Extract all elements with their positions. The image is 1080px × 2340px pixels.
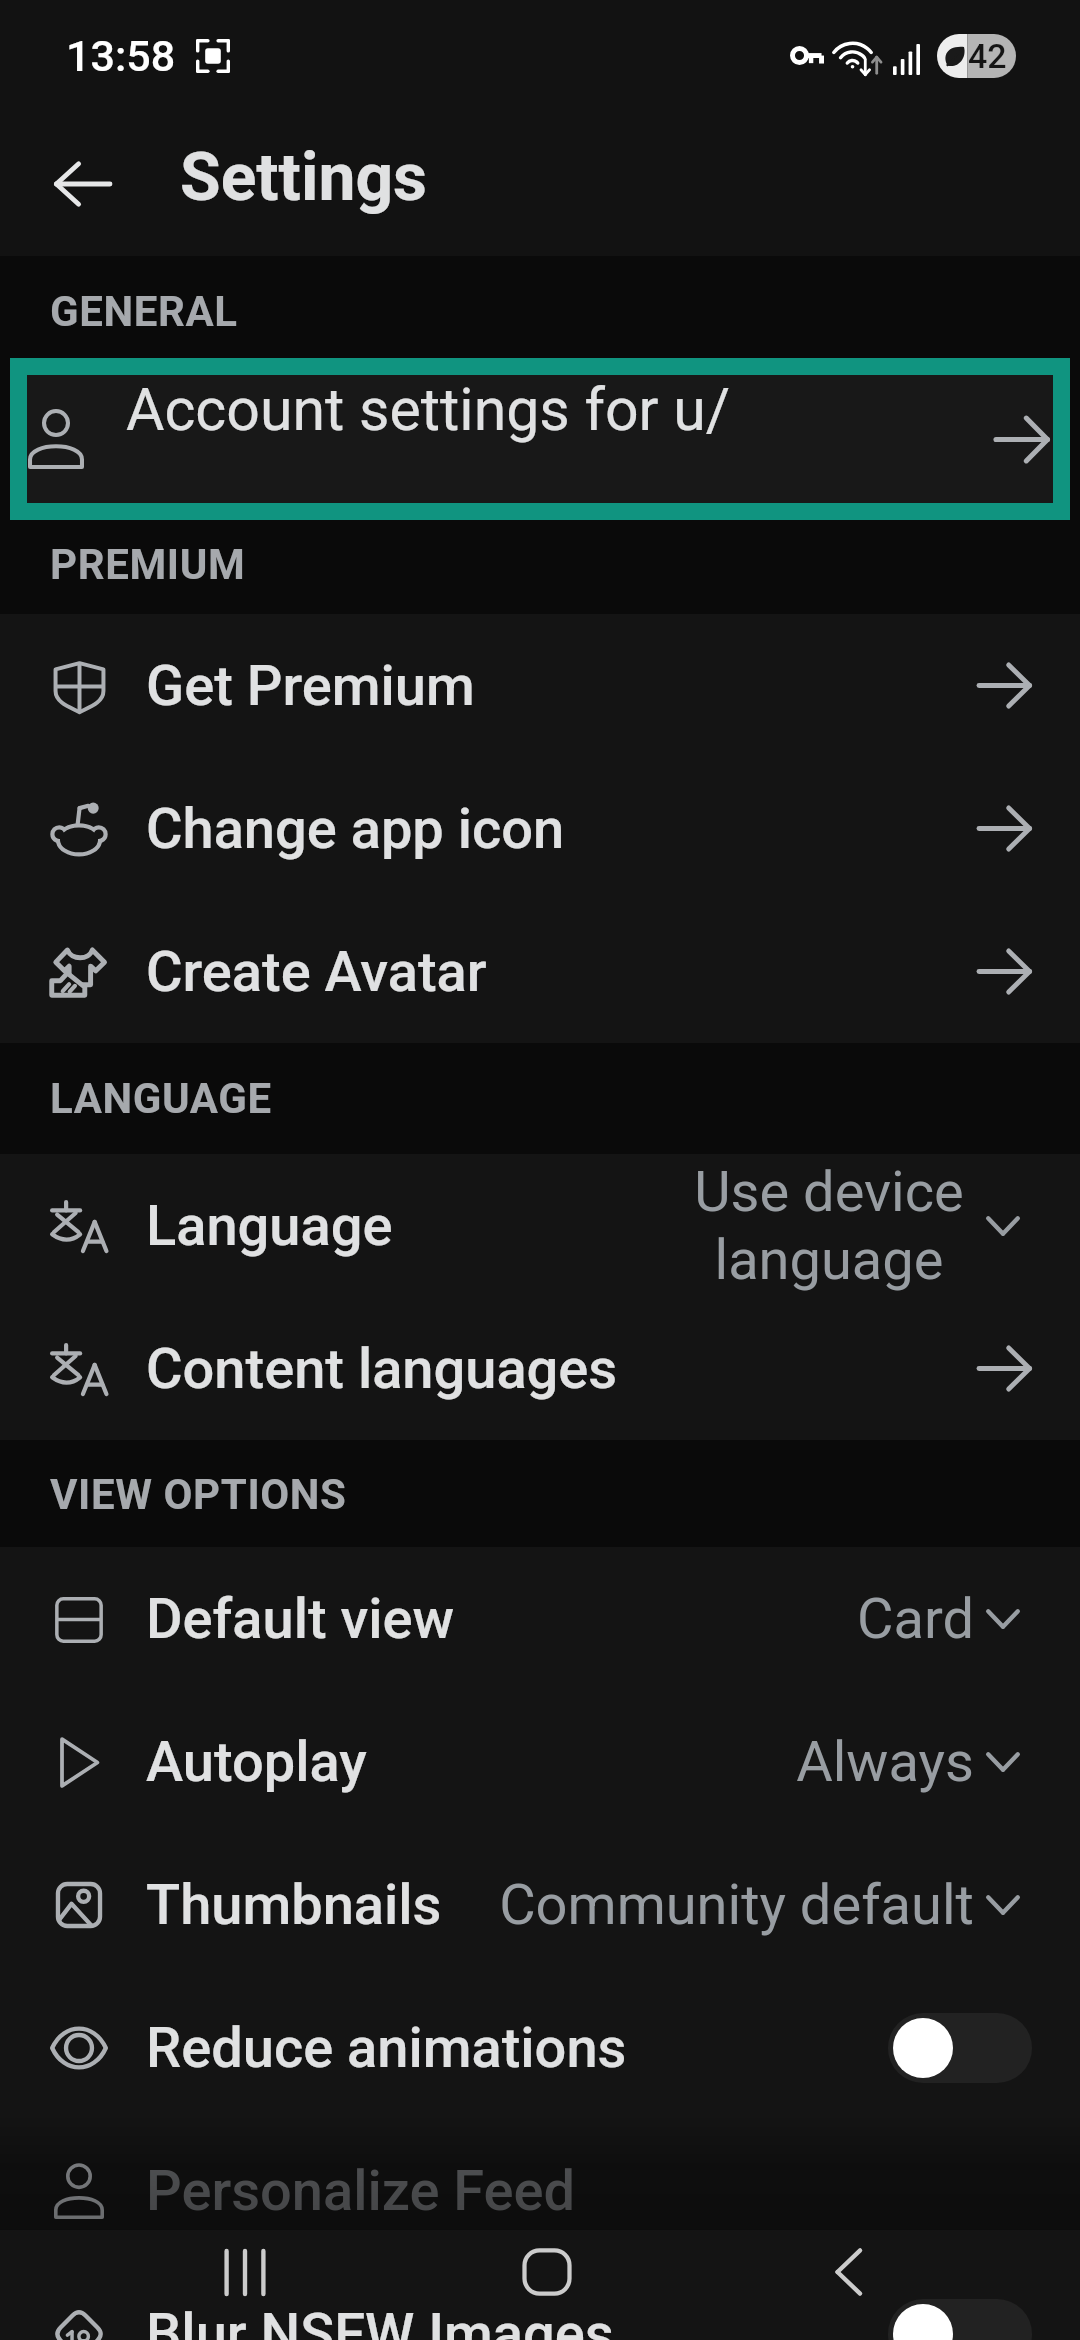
staticText: Content languages [146, 1336, 618, 1402]
staticText: Thumbnails [146, 1872, 442, 1938]
button[interactable]: Home [499, 2247, 595, 2297]
staticText: Create Avatar [146, 939, 487, 1005]
button[interactable]: Language [0, 1154, 1080, 1297]
staticText: Account settings for u/ [126, 375, 731, 444]
staticText: Default view [146, 1586, 455, 1652]
staticText: Personalize Feed [146, 2158, 576, 2224]
staticText: 42 [968, 36, 1007, 76]
staticText: Reduce animations [146, 2015, 627, 2081]
staticText: Change app icon [146, 796, 565, 862]
staticText: Language [146, 1193, 393, 1259]
button[interactable]: Recent apps [197, 2247, 293, 2297]
button[interactable]: Content languages [0, 1297, 1080, 1440]
staticText: PREMIUM [50, 540, 246, 589]
button[interactable]: Create Avatar [0, 900, 1080, 1043]
button[interactable]: Back [26, 128, 138, 240]
staticText: LANGUAGE [50, 1074, 272, 1123]
button[interactable]: Personalize Feed [0, 2119, 1080, 2262]
button[interactable]: Reduce animations [0, 1976, 1080, 2119]
staticText: Get Premium [146, 653, 475, 719]
button[interactable]: Change app icon [0, 757, 1080, 900]
button[interactable]: Default view [0, 1547, 1080, 1690]
button[interactable]: Blur NSFW Images [0, 2262, 1080, 2340]
button[interactable]: Thumbnails [0, 1833, 1080, 1976]
button[interactable]: Back [800, 2247, 896, 2297]
button[interactable]: Get Premium [0, 614, 1080, 757]
staticText: GENERAL [50, 287, 238, 336]
staticText: Settings [180, 139, 428, 216]
staticText: Blur NSFW Images [146, 2301, 614, 2340]
staticText: Use device language [684, 1159, 974, 1293]
button[interactable]: Autoplay [0, 1690, 1080, 1833]
staticText: 13:58 [66, 31, 176, 81]
staticText: VIEW OPTIONS [50, 1470, 347, 1519]
button[interactable]: Account settings for u/ [27, 375, 1053, 503]
staticText: Autoplay [146, 1729, 367, 1795]
staticText: Card [857, 1586, 974, 1652]
staticText: Always [796, 1729, 974, 1795]
button[interactable] [888, 2013, 1032, 2083]
button[interactable] [888, 2299, 1032, 2340]
staticText: Community default [499, 1872, 974, 1938]
